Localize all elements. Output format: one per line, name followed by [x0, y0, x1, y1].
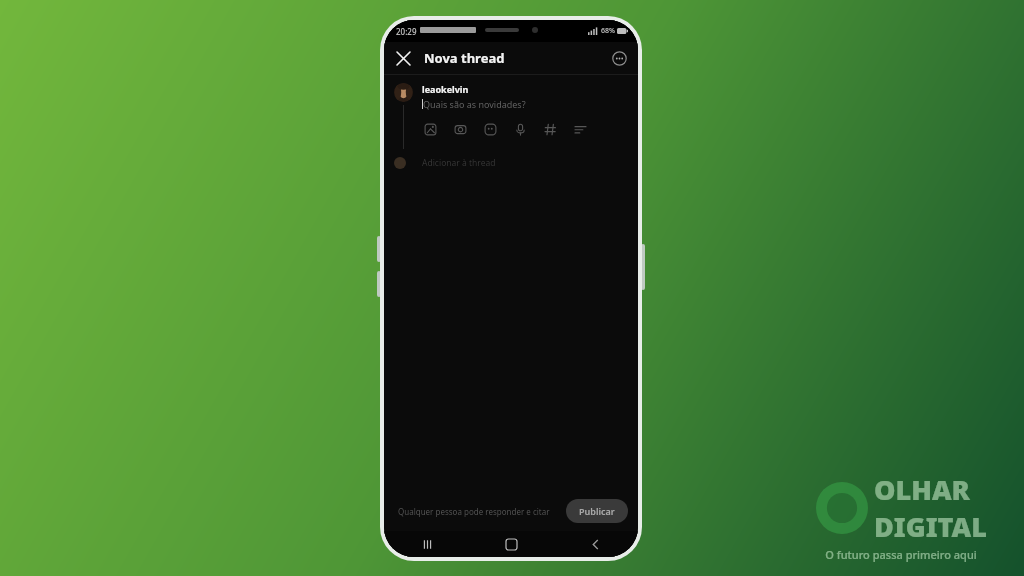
button[interactable]: Início	[498, 531, 524, 557]
button[interactable]: Adicionar imagem	[422, 121, 439, 138]
button[interactable]: Mais opções	[606, 45, 632, 71]
staticText: 68%	[601, 26, 615, 36]
staticText: Nova thread	[424, 49, 505, 67]
staticText: DIGITAL	[874, 508, 987, 545]
button[interactable]: Recentes	[414, 531, 440, 557]
button[interactable]: Qualquer pessoa pode responder e citar	[398, 506, 552, 517]
staticText: Quais são as novidades?	[423, 98, 526, 110]
button[interactable]: Áudio	[512, 121, 529, 138]
staticText: 20:29	[396, 26, 417, 37]
button[interactable]: Publicar	[566, 499, 628, 523]
staticText: O futuro passa primeiro aqui	[825, 547, 977, 562]
staticText: Publicar	[579, 505, 615, 517]
button[interactable]: Fechar	[388, 43, 418, 73]
button[interactable]: Adicionar à thread	[394, 157, 626, 169]
button[interactable]: Enquete	[572, 121, 589, 138]
staticText: OLHAR	[874, 471, 970, 508]
button[interactable]: GIF	[482, 121, 499, 138]
button[interactable]: Câmera	[452, 121, 469, 138]
button[interactable]: Voltar	[582, 531, 608, 557]
staticText: leaokelvin	[422, 83, 469, 95]
staticText: Adicionar à thread	[422, 157, 496, 169]
button[interactable]: Hashtag	[542, 121, 559, 138]
